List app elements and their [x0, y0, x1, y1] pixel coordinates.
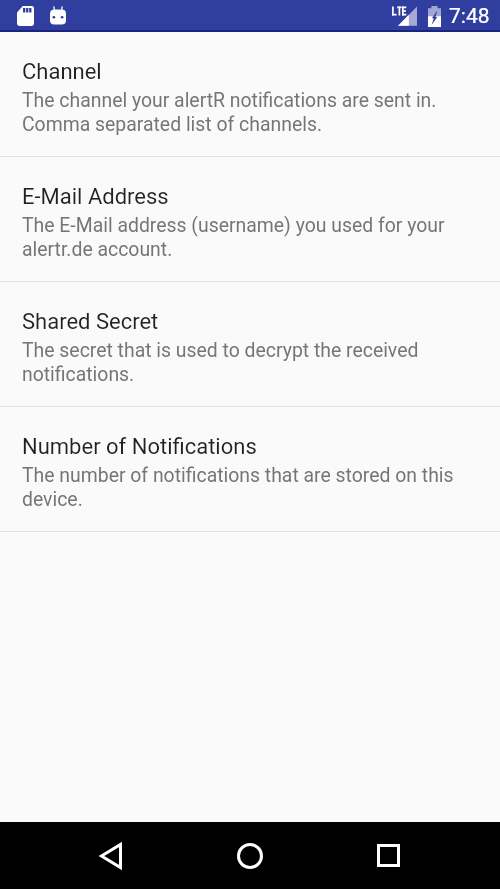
- staticText: Number of Notifications: [22, 434, 257, 460]
- staticText: 7:48: [449, 4, 490, 29]
- button[interactable]: E-Mail Address: [0, 157, 500, 281]
- staticText: Shared Secret: [22, 309, 159, 335]
- button[interactable]: Channel: [0, 32, 500, 156]
- staticText: Channel: [22, 59, 102, 85]
- button[interactable]: Back: [0, 822, 166, 889]
- button[interactable]: Recent apps: [333, 822, 500, 889]
- staticText: The E-Mail address (username) you used f…: [22, 214, 478, 260]
- button[interactable]: Shared Secret: [0, 282, 500, 406]
- staticText: E-Mail Address: [22, 184, 169, 210]
- staticText: The number of notifications that are sto…: [22, 464, 478, 510]
- button[interactable]: Number of Notifications: [0, 407, 500, 531]
- staticText: The channel your alertR notifications ar…: [22, 89, 478, 135]
- button[interactable]: Home: [166, 822, 333, 889]
- staticText: The secret that is used to decrypt the r…: [22, 339, 478, 385]
